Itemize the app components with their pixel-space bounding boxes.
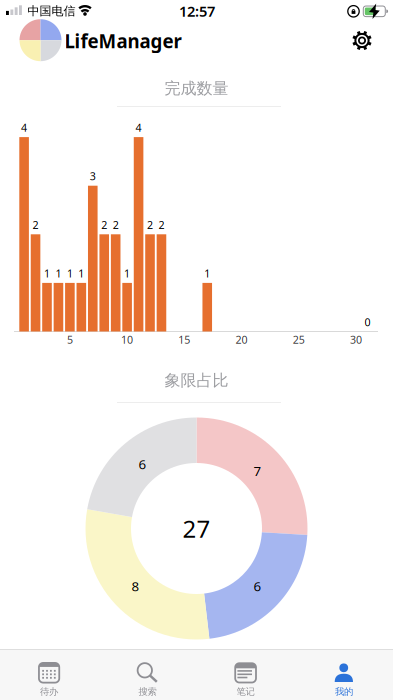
staticText: 25 bbox=[293, 332, 305, 347]
button[interactable]: 笔记 bbox=[197, 658, 295, 700]
staticText: 中国电信 bbox=[27, 4, 75, 18]
staticText: 1 bbox=[78, 266, 84, 280]
staticText: 1 bbox=[55, 266, 61, 280]
staticText: 6 bbox=[254, 577, 262, 595]
staticText: 15 bbox=[178, 332, 190, 347]
staticText: 1 bbox=[124, 266, 130, 280]
staticText: 象限占比 bbox=[164, 371, 228, 390]
staticText: 4 bbox=[21, 120, 27, 135]
button[interactable]: 我的 bbox=[295, 658, 393, 700]
staticText: 0 bbox=[364, 315, 370, 329]
staticText: 12:57 bbox=[179, 1, 215, 21]
staticText: 1 bbox=[67, 266, 73, 280]
staticText: 待办 bbox=[40, 686, 58, 697]
staticText: 1 bbox=[204, 266, 210, 280]
staticText: LifeManager bbox=[64, 29, 181, 53]
staticText: 2 bbox=[147, 218, 153, 232]
staticText: 4 bbox=[136, 120, 142, 135]
staticText: 2 bbox=[158, 218, 164, 232]
staticText: 30 bbox=[350, 332, 362, 347]
staticText: 2 bbox=[101, 218, 107, 232]
staticText: 5 bbox=[67, 332, 73, 347]
staticText: 完成数量 bbox=[164, 79, 228, 98]
staticText: 我的 bbox=[335, 686, 353, 697]
staticText: 1 bbox=[44, 266, 50, 280]
staticText: 2 bbox=[113, 218, 119, 232]
staticText: 搜索 bbox=[138, 686, 156, 697]
staticText: 27 bbox=[182, 513, 210, 544]
button[interactable]: Settings bbox=[344, 22, 380, 58]
staticText: 笔记 bbox=[237, 686, 255, 697]
staticText: 7 bbox=[254, 462, 262, 480]
staticText: 6 bbox=[138, 455, 146, 473]
button[interactable]: 搜索 bbox=[98, 658, 196, 700]
staticText: 3 bbox=[90, 169, 96, 183]
staticText: 8 bbox=[131, 577, 139, 595]
staticText: 10 bbox=[121, 332, 133, 347]
staticText: 20 bbox=[236, 332, 248, 347]
staticText: 2 bbox=[32, 218, 38, 232]
button[interactable]: 待办 bbox=[0, 658, 98, 700]
